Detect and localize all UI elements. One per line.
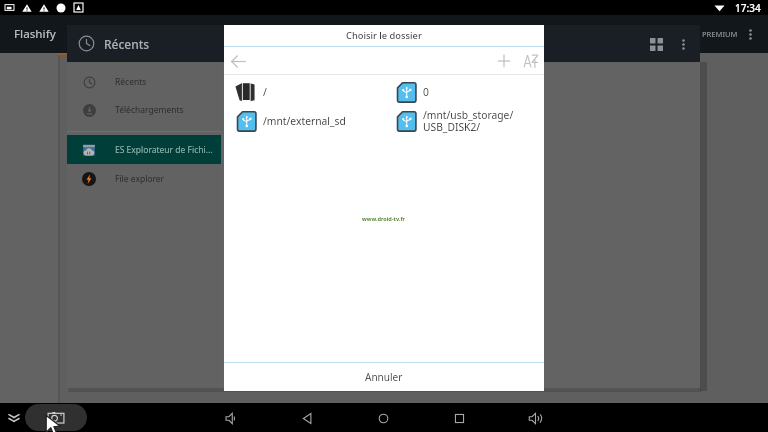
staticText: File explorer [115, 173, 165, 185]
staticText: Flashify [14, 26, 56, 42]
staticText: Téléchargements [115, 104, 184, 116]
button[interactable]: Volume up [521, 404, 549, 432]
staticText: /mnt/external_sd [263, 114, 346, 128]
staticText: PREMIUM [702, 29, 738, 39]
button[interactable]: Annuler [224, 363, 544, 391]
button[interactable]: Récents [67, 68, 221, 96]
button[interactable]: Collapse [6, 410, 22, 426]
staticText: / [263, 85, 267, 99]
button[interactable]: Téléchargements [67, 96, 221, 124]
button[interactable]: / [224, 77, 384, 106]
button[interactable]: Recents [445, 404, 473, 432]
button[interactable]: Sort [520, 50, 541, 71]
button[interactable]: More options [670, 31, 696, 57]
button[interactable]: ES Explorateur de Fichi… [67, 135, 221, 164]
staticText: 0 [423, 85, 429, 99]
button[interactable]: Back [293, 404, 321, 432]
staticText: ES Explorateur de Fichi… [115, 144, 213, 156]
button[interactable]: Volume down [217, 404, 245, 432]
button[interactable]: More options [738, 22, 762, 46]
button[interactable]: Grid view [642, 30, 670, 58]
staticText: /mnt/usb_storage/ USB_DISK2/ [423, 108, 514, 134]
button[interactable]: File explorer [67, 164, 221, 193]
button[interactable]: Home [369, 404, 397, 432]
staticText: www.droid-tv.fr [362, 215, 406, 222]
button[interactable]: Screenshot [25, 404, 87, 431]
staticText: Choisir le dossier [346, 29, 422, 42]
button[interactable]: 0 [384, 77, 544, 106]
button[interactable]: /mnt/usb_storage/ USB_DISK2/ [384, 106, 544, 135]
staticText: Annuler [365, 370, 403, 384]
button[interactable]: /mnt/external_sd [224, 106, 384, 135]
staticText: Récents [104, 36, 150, 52]
button[interactable]: Back [227, 50, 249, 72]
staticText: 17:34 [735, 1, 761, 15]
staticText: Récents [115, 76, 147, 88]
button[interactable]: Add folder [493, 50, 514, 71]
